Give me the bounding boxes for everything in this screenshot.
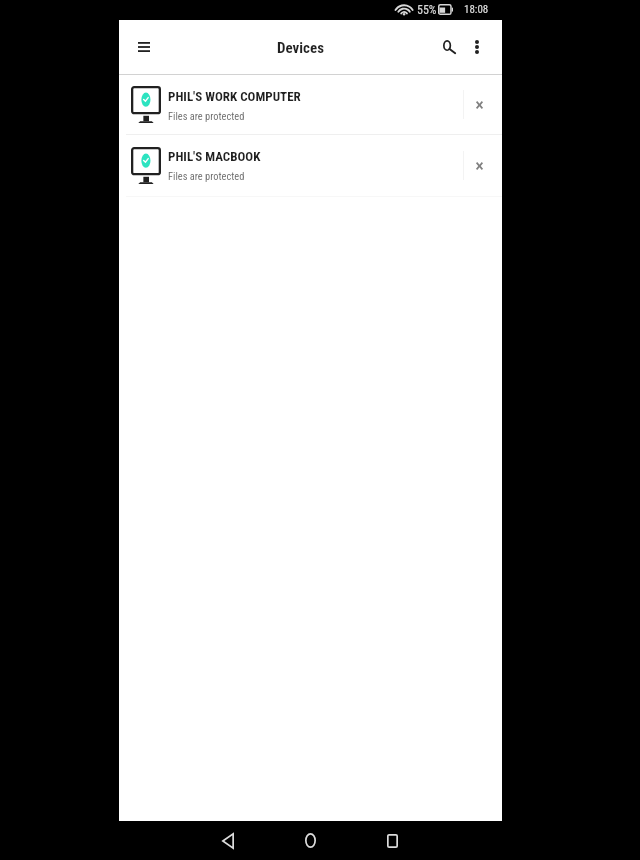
staticText: PHIL'S WORK COMPUTER	[168, 89, 301, 104]
button[interactable]: Search	[427, 25, 471, 69]
button[interactable]: Home	[288, 821, 332, 860]
button[interactable]: Back	[206, 821, 250, 860]
button[interactable]: Open navigation menu	[120, 23, 168, 71]
staticText: 55%	[417, 3, 437, 17]
staticText: Devices	[277, 39, 324, 57]
staticText: Files are protected	[168, 170, 245, 182]
staticText: PHIL'S MACBOOK	[168, 149, 261, 164]
staticText: Files are protected	[168, 110, 245, 122]
button[interactable]: More options	[455, 25, 499, 69]
button[interactable]: Remove device	[464, 135, 502, 196]
button[interactable]: Recent apps	[370, 821, 414, 860]
staticText: 18:08	[464, 3, 489, 16]
button[interactable]: PHIL'S WORK COMPUTER	[119, 75, 502, 134]
button[interactable]: Remove device	[464, 75, 502, 134]
button[interactable]: PHIL'S MACBOOK	[119, 135, 502, 196]
